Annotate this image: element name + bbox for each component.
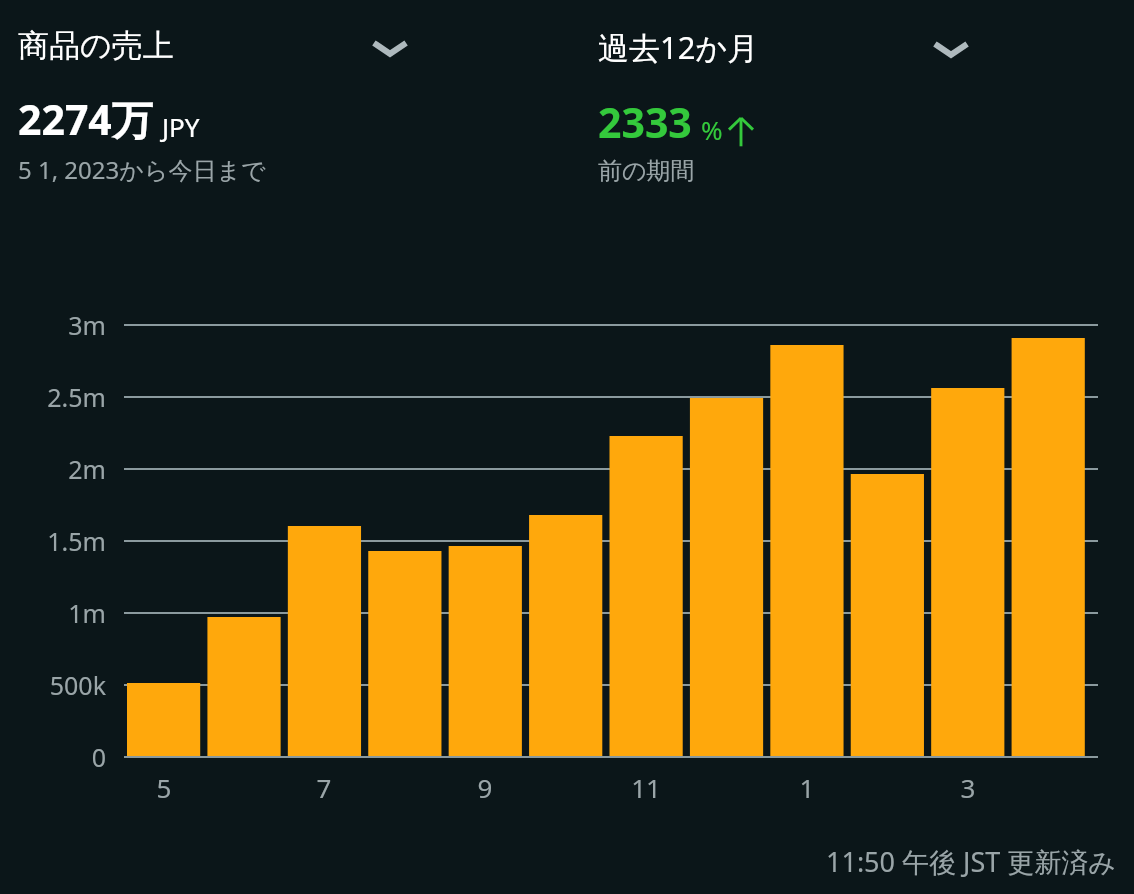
- button[interactable]: 過去12か月: [580, 0, 1134, 68]
- staticText: 2m: [0, 452, 106, 486]
- staticText: 5 1, 2023から今日まで: [18, 153, 266, 186]
- staticText: 500k: [0, 668, 106, 702]
- staticText: 7: [284, 770, 364, 805]
- button[interactable]: 商品の売上: [0, 0, 580, 65]
- staticText: 商品の売上: [18, 26, 174, 65]
- staticText: 3m: [0, 308, 106, 342]
- staticText: 11: [606, 770, 686, 805]
- staticText: 2.5m: [0, 380, 106, 414]
- button[interactable]: 売上の棒グラフ: [110, 300, 1110, 770]
- button[interactable]: 期間を選択: [923, 22, 979, 78]
- staticText: 2333: [598, 94, 692, 150]
- staticText: 0: [0, 740, 106, 774]
- staticText: 1.5m: [0, 524, 106, 558]
- staticText: 過去12か月: [598, 26, 759, 68]
- staticText: JPY: [162, 109, 200, 144]
- button[interactable]: 商品の売上を選択: [362, 21, 418, 77]
- staticText: 3: [928, 770, 1008, 805]
- staticText: 9: [445, 770, 525, 805]
- staticText: 前の期間: [598, 156, 695, 186]
- staticText: 1: [767, 770, 847, 805]
- staticText: 11:50 午後 JST 更新済み: [826, 843, 1116, 880]
- staticText: %: [701, 112, 723, 147]
- staticText: 2274万: [18, 91, 153, 147]
- staticText: 1m: [0, 596, 106, 630]
- staticText: 5: [124, 770, 204, 805]
